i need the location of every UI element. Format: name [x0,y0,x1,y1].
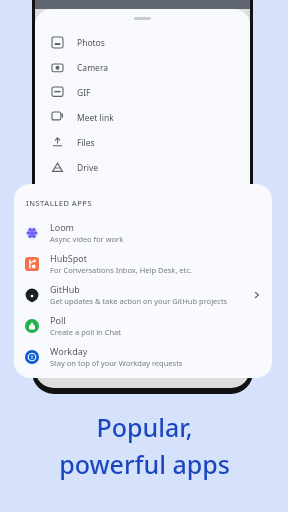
staticText: GIF [77,87,91,99]
staticText: Popular, [96,410,193,444]
staticText: HubSpot [50,252,87,264]
staticText: Workday [50,345,88,357]
staticText: Camera [77,62,108,74]
staticText: GitHub [50,283,80,295]
button[interactable]: Camera [35,55,250,80]
button[interactable]: Drive [35,155,250,180]
staticText: Get updates & take action on your GitHub… [50,296,228,306]
button[interactable]: Poll [14,310,272,341]
staticText: For Conversations Inbox, Help Desk, etc. [50,265,192,275]
button[interactable]: Meet link [35,105,250,130]
button[interactable]: Loom [14,217,272,248]
button[interactable]: Files [35,130,250,155]
staticText: Create a poll in Chat [50,327,121,337]
staticText: Poll [50,314,66,326]
staticText: INSTALLED APPS [26,198,93,208]
staticText: powerful apps [59,447,230,481]
staticText: Stay on top of your Workday requests [50,358,183,368]
staticText: Async video for work [50,234,124,244]
staticText: Meet link [77,112,114,124]
staticText: Photos [77,37,105,49]
button[interactable]: GitHub [14,279,272,310]
staticText: Drive [77,162,99,174]
staticText: Loom [50,221,75,233]
button[interactable]: Photos [35,30,250,55]
button[interactable]: HubSpot [14,248,272,279]
button[interactable]: GIF [35,80,250,105]
staticText: Files [77,137,95,149]
other: Open GitHub [252,290,262,300]
button[interactable]: Workday [14,341,272,372]
